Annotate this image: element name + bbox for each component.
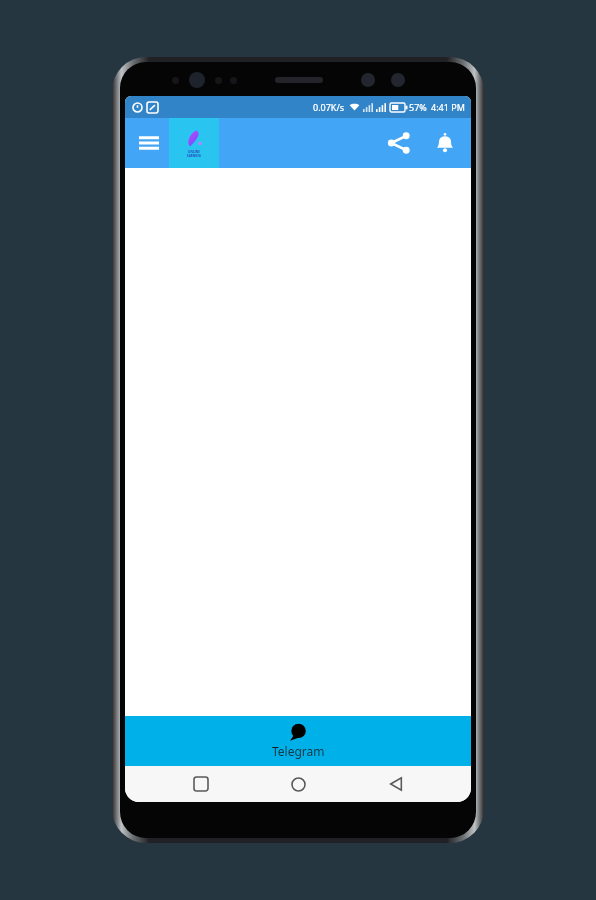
staticText: 4:41 PM [431,101,465,113]
button[interactable]: Home [276,766,320,802]
button[interactable]: App logo [169,118,219,168]
button[interactable]: Recent apps [179,766,223,802]
staticText: Telegram [272,743,325,759]
button[interactable]: Notifications [423,119,467,167]
staticText: 57% [409,101,427,113]
staticText: ONLINE EARNING [187,150,201,158]
button[interactable]: Open navigation menu [129,123,169,163]
button[interactable]: Back [374,766,418,802]
button[interactable]: Share [375,119,423,167]
staticText: 0.07K/s [313,101,345,113]
button[interactable]: Telegram [125,716,471,766]
